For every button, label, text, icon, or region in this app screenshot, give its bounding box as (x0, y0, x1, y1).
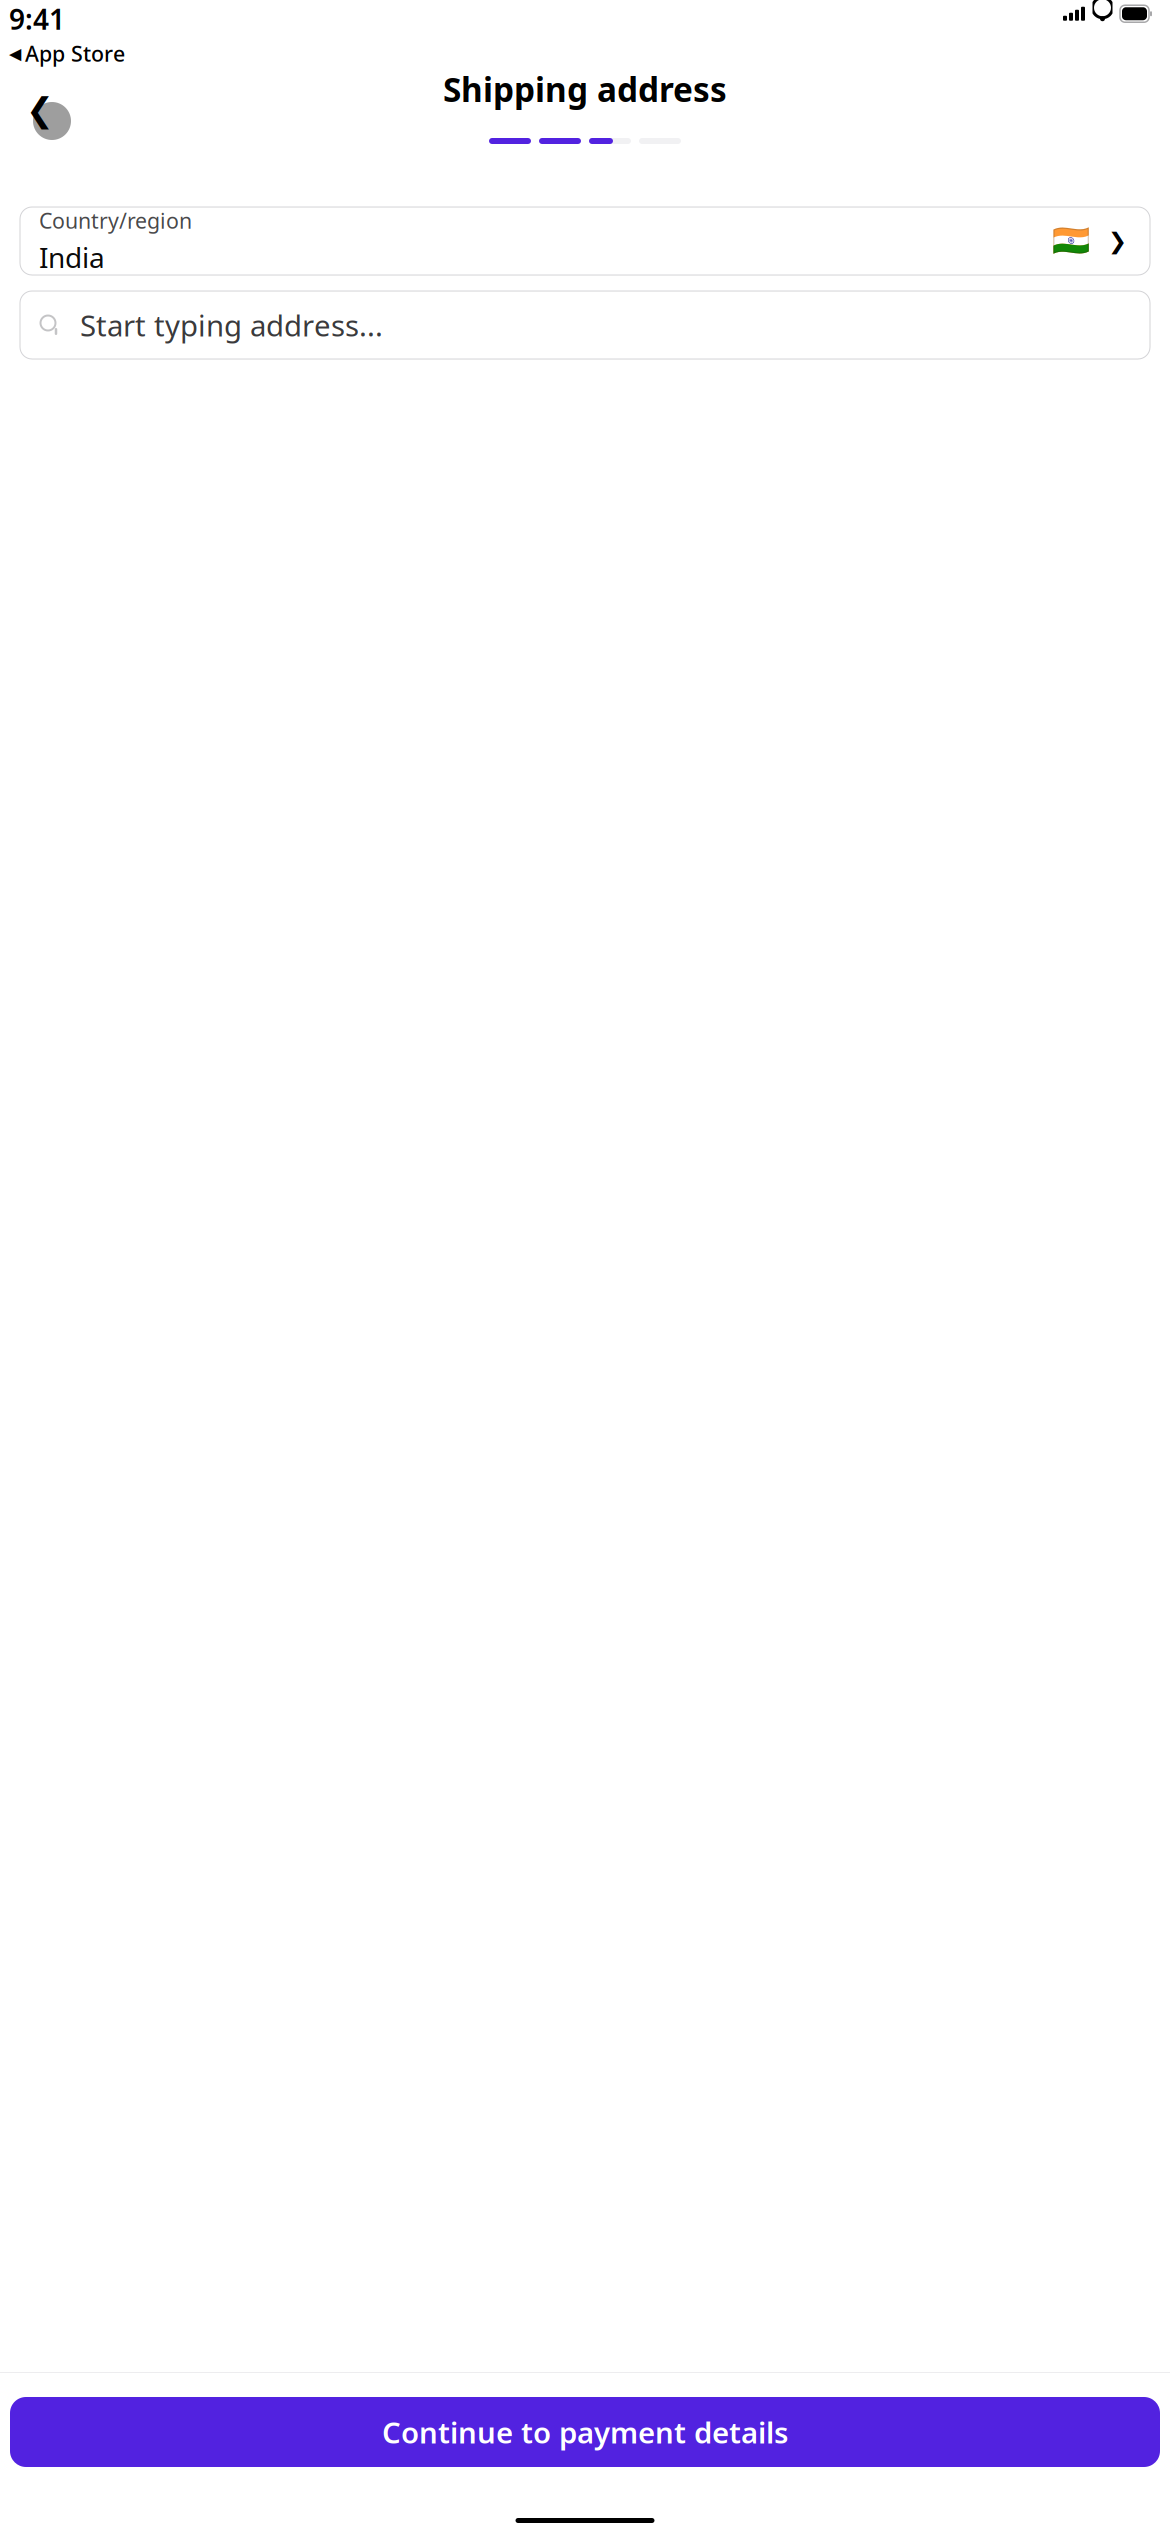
staticText: App Store (25, 39, 125, 68)
button[interactable]: Start typing address... (20, 291, 1150, 359)
staticText: 🇮🇳 (1052, 223, 1090, 258)
staticText: Continue to payment details (382, 2412, 788, 2451)
staticText: Start typing address... (80, 305, 383, 344)
staticText: Shipping address (443, 67, 727, 111)
staticText: ❮ (26, 91, 54, 129)
button[interactable]: Country/region (20, 207, 1150, 275)
staticText: Country/region (39, 206, 192, 234)
staticText: ◀ (9, 44, 21, 63)
button[interactable]: Back (12, 81, 78, 147)
staticText: 9:41 (9, 0, 65, 37)
button[interactable]: Continue to payment details (10, 2397, 1160, 2467)
staticText: India (39, 239, 105, 276)
staticText: ❯ (1108, 228, 1127, 254)
